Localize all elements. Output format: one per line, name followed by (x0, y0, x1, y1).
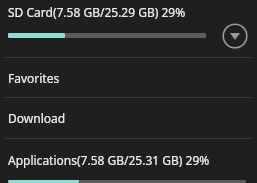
button[interactable]: Applications(7.58 GB/25.31 GB) 29% (0, 139, 257, 183)
staticText: SD Card(7.58 GB/25.29 GB) 29% (8, 4, 186, 20)
staticText: Applications(7.58 GB/25.31 GB) 29% (8, 152, 210, 168)
button[interactable]: Download (0, 98, 257, 137)
button[interactable]: Expand storage details (222, 23, 248, 49)
button[interactable]: Favorites (0, 58, 257, 97)
staticText: Download (8, 110, 66, 126)
staticText: Favorites (8, 70, 60, 86)
button[interactable]: SD Card(7.58 GB/25.29 GB) 29% (0, 0, 257, 57)
